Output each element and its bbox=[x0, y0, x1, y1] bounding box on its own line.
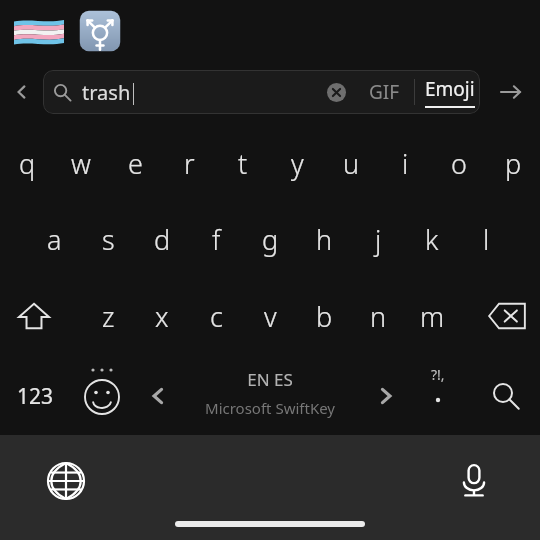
button[interactable]: GIF bbox=[356, 70, 412, 114]
button[interactable]: e bbox=[108, 130, 162, 196]
button[interactable]: Transgender symbol emoji bbox=[77, 8, 123, 54]
staticText: a bbox=[47, 221, 62, 258]
button[interactable]: i bbox=[378, 130, 432, 196]
button[interactable]: n bbox=[351, 284, 405, 348]
staticText: q bbox=[19, 145, 36, 182]
button[interactable]: b bbox=[297, 284, 351, 348]
button[interactable]: c bbox=[189, 284, 243, 348]
staticText: z bbox=[102, 298, 115, 335]
button[interactable]: p bbox=[486, 130, 540, 196]
button[interactable]: w bbox=[54, 130, 108, 196]
staticText: k bbox=[425, 221, 439, 258]
button[interactable]: o bbox=[432, 130, 486, 196]
button[interactable]: Backspace bbox=[479, 284, 535, 348]
staticText: EN ES bbox=[247, 368, 293, 391]
button[interactable]: m bbox=[405, 284, 459, 348]
staticText: u bbox=[343, 145, 360, 182]
button[interactable]: q bbox=[0, 130, 54, 196]
button[interactable]: Previous language bbox=[130, 366, 186, 426]
button[interactable]: f bbox=[189, 206, 243, 272]
staticText: 123 bbox=[17, 382, 54, 411]
button[interactable]: Shift bbox=[7, 284, 61, 348]
button[interactable]: Search bbox=[477, 366, 535, 426]
button[interactable]: z bbox=[81, 284, 135, 348]
staticText: w bbox=[71, 145, 91, 182]
button[interactable]: t bbox=[216, 130, 270, 196]
button[interactable]: Back bbox=[4, 68, 40, 116]
staticText: l bbox=[483, 221, 490, 258]
staticText: trash bbox=[82, 79, 131, 106]
staticText: f bbox=[212, 221, 221, 258]
button[interactable]: Voice input bbox=[444, 451, 504, 511]
button[interactable]: s bbox=[81, 206, 135, 272]
button[interactable]: x bbox=[135, 284, 189, 348]
button[interactable]: Transgender flag emoji bbox=[14, 8, 64, 54]
button[interactable]: 123 bbox=[6, 366, 64, 426]
staticText: Microsoft SwiftKey bbox=[205, 398, 335, 418]
button[interactable]: trash bbox=[53, 70, 480, 114]
staticText: r bbox=[184, 145, 195, 182]
button[interactable]: j bbox=[351, 206, 405, 272]
staticText: v bbox=[264, 298, 277, 335]
button[interactable]: Emoji keyboard bbox=[74, 360, 130, 426]
button[interactable]: g bbox=[243, 206, 297, 272]
button[interactable]: Clear search bbox=[316, 72, 356, 112]
button[interactable]: ?!, bbox=[410, 360, 466, 426]
button[interactable]: h bbox=[297, 206, 351, 272]
button[interactable]: r bbox=[162, 130, 216, 196]
staticText: p bbox=[505, 145, 522, 182]
staticText: GIF bbox=[369, 79, 400, 105]
staticText: i bbox=[402, 145, 409, 182]
staticText: b bbox=[316, 298, 333, 335]
staticText: e bbox=[128, 145, 143, 182]
staticText: d bbox=[154, 221, 171, 258]
button[interactable]: k bbox=[405, 206, 459, 272]
button[interactable]: Emoji bbox=[421, 70, 479, 114]
staticText: o bbox=[451, 145, 467, 182]
button[interactable]: d bbox=[135, 206, 189, 272]
staticText: n bbox=[370, 298, 387, 335]
button[interactable]: l bbox=[459, 206, 513, 272]
button[interactable]: y bbox=[270, 130, 324, 196]
button[interactable]: u bbox=[324, 130, 378, 196]
staticText: s bbox=[102, 221, 115, 258]
staticText: ?!, bbox=[431, 365, 445, 384]
staticText: Emoji bbox=[425, 76, 475, 102]
staticText: x bbox=[155, 298, 169, 335]
button[interactable]: a bbox=[27, 206, 81, 272]
button[interactable]: EN ES bbox=[186, 360, 354, 426]
staticText: j bbox=[375, 221, 382, 258]
button[interactable]: Change keyboard bbox=[36, 451, 96, 511]
button[interactable]: Next language bbox=[358, 366, 414, 426]
staticText: m bbox=[420, 298, 445, 335]
staticText: t bbox=[238, 145, 248, 182]
staticText: g bbox=[262, 221, 279, 258]
button[interactable]: More bbox=[489, 68, 533, 116]
staticText: y bbox=[291, 145, 304, 182]
staticText: c bbox=[210, 298, 223, 335]
button[interactable]: v bbox=[243, 284, 297, 348]
staticText: h bbox=[316, 221, 333, 258]
